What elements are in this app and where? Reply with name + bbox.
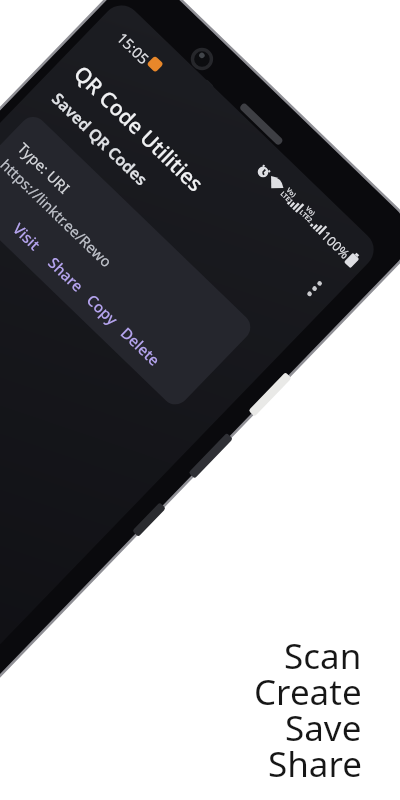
button[interactable]	[8, 205, 64, 253]
button[interactable]	[296, 270, 332, 306]
button[interactable]: Create	[254, 668, 362, 716]
button[interactable]: Save	[285, 704, 362, 752]
button[interactable]: Share	[268, 740, 362, 788]
button[interactable]	[80, 278, 136, 326]
button[interactable]: Scan	[284, 632, 362, 680]
button[interactable]	[42, 240, 98, 288]
button[interactable]	[114, 310, 174, 358]
